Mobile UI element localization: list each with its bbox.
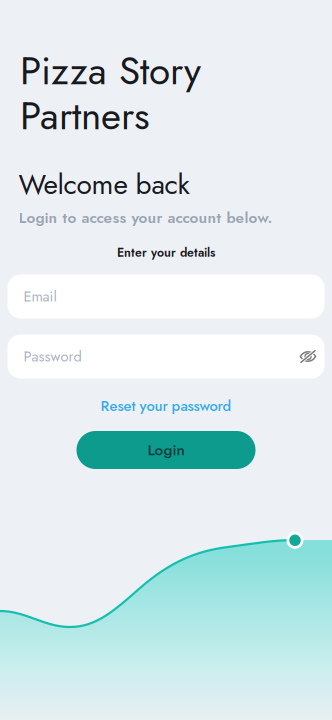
staticText: Welcome back — [18, 164, 189, 204]
staticText: Password — [23, 346, 81, 367]
button[interactable]: Show password — [299, 349, 316, 364]
staticText: Email — [23, 286, 56, 307]
staticText: Reset your password — [100, 395, 231, 417]
staticText: Login to access your account below. — [18, 206, 272, 229]
staticText: Pizza Story — [20, 43, 201, 99]
staticText: Enter your details — [117, 243, 215, 261]
staticText: Partners — [20, 88, 150, 144]
staticText: Login — [147, 439, 184, 461]
button[interactable]: Reset your password — [0, 396, 332, 416]
button[interactable]: Login — [76, 431, 255, 469]
